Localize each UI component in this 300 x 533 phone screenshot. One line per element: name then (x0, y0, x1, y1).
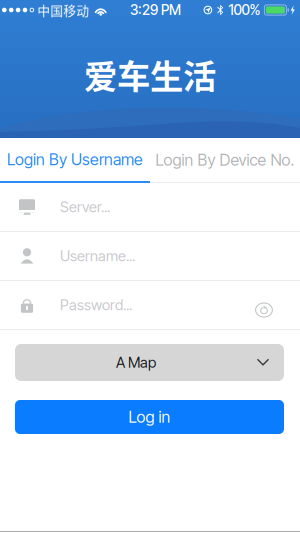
button[interactable]: Login By Username (0, 138, 150, 183)
staticText: Server... (60, 198, 110, 216)
staticText: Username... (60, 247, 135, 265)
staticText: Log in (128, 407, 170, 427)
button[interactable]: A Map (15, 344, 284, 381)
button[interactable]: Log in (15, 400, 284, 434)
staticText: A Map (116, 354, 156, 371)
staticText: 100% (228, 1, 260, 18)
button[interactable]: Show password (255, 292, 284, 317)
staticText: Login By Username (7, 150, 143, 169)
button[interactable]: Login By Device No. (150, 138, 300, 183)
staticText: 中国移动 (37, 1, 89, 19)
staticText: 爱车生活 (84, 50, 216, 98)
staticText: Password... (60, 296, 132, 314)
staticText: Login By Device No. (155, 150, 294, 170)
staticText: 3:29 PM (130, 1, 181, 18)
